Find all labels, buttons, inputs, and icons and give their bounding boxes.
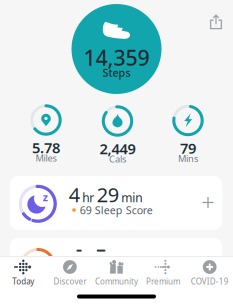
- button[interactable]: Share: [205, 11, 227, 33]
- button[interactable]: COVID-19: [186, 256, 233, 290]
- button[interactable]: [9, 238, 222, 292]
- button[interactable]: Today: [0, 256, 47, 290]
- staticText: Community: [95, 276, 138, 287]
- staticText: 14,359: [83, 43, 149, 72]
- staticText: Steps: [102, 65, 130, 80]
- staticText: Cals: [109, 153, 126, 165]
- staticText: Miles: [35, 152, 56, 164]
- button[interactable]: 14,359: [66, 0, 166, 100]
- staticText: z: [43, 190, 48, 204]
- button[interactable]: 5.78: [14, 101, 78, 165]
- button[interactable]: Premium: [140, 256, 186, 290]
- staticText: 2,449: [99, 139, 135, 158]
- staticText: 4: [69, 181, 80, 208]
- button[interactable]: 2,449: [85, 102, 149, 166]
- button[interactable]: 79: [156, 101, 220, 165]
- staticText: 69 Sleep Score: [80, 203, 153, 217]
- button[interactable]: Discover: [47, 256, 93, 290]
- staticText: COVID-19: [191, 276, 229, 287]
- button[interactable]: Community: [93, 256, 140, 290]
- staticText: 5.78: [32, 138, 60, 157]
- staticText: Discover: [53, 276, 86, 287]
- staticText: min: [121, 190, 142, 205]
- staticText: hr: [82, 190, 94, 205]
- staticText: 79: [180, 138, 196, 158]
- button[interactable]: z: [9, 176, 222, 230]
- staticText: Premium: [146, 276, 180, 287]
- staticText: Mins: [178, 152, 198, 165]
- staticText: Today: [12, 276, 34, 287]
- staticText: 29: [97, 181, 119, 208]
